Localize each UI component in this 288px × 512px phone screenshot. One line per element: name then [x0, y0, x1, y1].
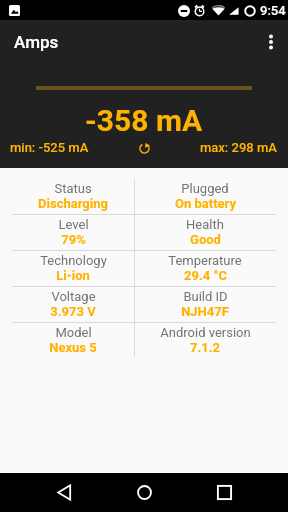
staticText: Voltage: [51, 289, 96, 304]
staticText: Temperature: [168, 253, 242, 268]
staticText: Li-ion: [56, 268, 90, 283]
staticText: Health: [186, 217, 224, 232]
button[interactable]: Reset: [132, 136, 156, 160]
staticText: Plugged: [181, 181, 229, 196]
button[interactable]: Android version: [134, 323, 276, 358]
staticText: On battery: [175, 196, 236, 211]
button[interactable]: Health: [134, 215, 276, 250]
button[interactable]: Home: [104, 473, 184, 512]
staticText: Level: [58, 217, 89, 232]
staticText: Model: [55, 325, 92, 340]
staticText: Discharging: [38, 196, 108, 211]
staticText: min: -525 mA: [10, 140, 89, 155]
staticText: Status: [54, 181, 92, 196]
staticText: Technology: [40, 253, 107, 268]
staticText: Nexus 5: [49, 340, 97, 355]
button[interactable]: Plugged: [134, 179, 276, 214]
staticText: Android version: [160, 325, 251, 340]
button[interactable]: Level: [12, 215, 134, 250]
staticText: 29.4 °C: [184, 268, 227, 283]
staticText: Good: [190, 232, 221, 247]
staticText: -358 mA: [85, 103, 203, 138]
staticText: max: 298 mA: [200, 140, 277, 155]
staticText: Amps: [14, 32, 59, 52]
button[interactable]: Voltage: [12, 287, 134, 322]
staticText: 9:54: [260, 3, 286, 18]
button[interactable]: Model: [12, 323, 134, 358]
button[interactable]: Temperature: [134, 251, 276, 286]
button[interactable]: Status: [12, 179, 134, 214]
button[interactable]: Build ID: [134, 287, 276, 322]
button[interactable]: Technology: [12, 251, 134, 286]
staticText: NJH47F: [181, 304, 229, 319]
staticText: 79%: [61, 232, 86, 247]
staticText: 7.1.2: [190, 340, 220, 355]
staticText: Build ID: [183, 289, 228, 304]
button[interactable]: More options: [253, 20, 288, 64]
button[interactable]: Back: [24, 473, 104, 512]
staticText: 3.973 V: [50, 304, 96, 319]
button[interactable]: Recents: [184, 473, 264, 512]
